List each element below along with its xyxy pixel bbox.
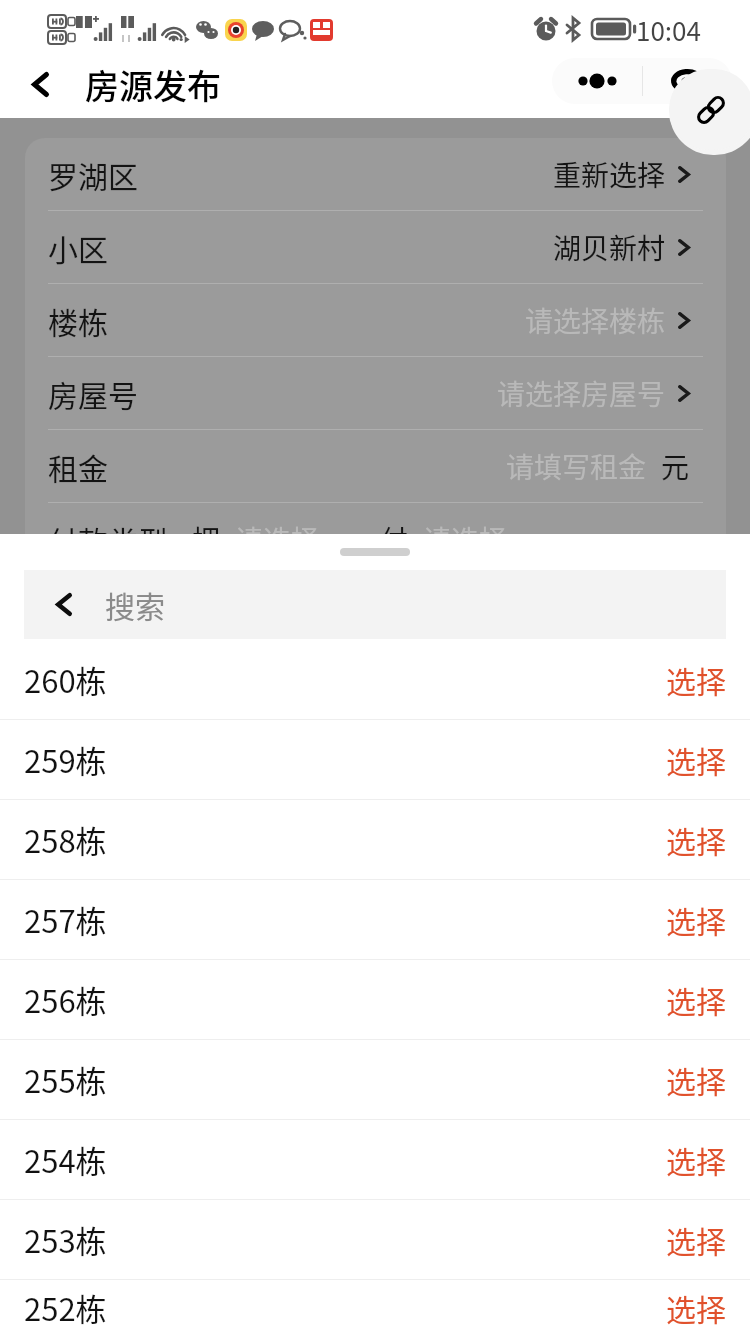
staticText: 255栋 bbox=[24, 1057, 107, 1102]
button[interactable]: 259栋 bbox=[0, 720, 750, 800]
button[interactable]: 楼栋 bbox=[25, 284, 726, 357]
button[interactable]: Close mini program bbox=[643, 58, 732, 104]
button[interactable]: 258栋 bbox=[0, 800, 750, 880]
staticText: 搜索 bbox=[105, 583, 165, 626]
staticText: 罗湖区 bbox=[48, 153, 138, 196]
staticText: 选择 bbox=[666, 978, 726, 1021]
staticText: 选择 bbox=[666, 898, 726, 941]
staticText: 请选择 bbox=[235, 519, 320, 560]
button[interactable]: Copy link bbox=[669, 69, 750, 150]
button[interactable]: 260栋 bbox=[0, 640, 750, 720]
staticText: 10:04 bbox=[636, 11, 701, 49]
staticText: 请选择 bbox=[423, 519, 508, 560]
staticText: 选择 bbox=[666, 738, 726, 781]
staticText: 房源发布 bbox=[85, 60, 221, 109]
button[interactable]: 252栋 bbox=[0, 1280, 750, 1334]
staticText: 253栋 bbox=[24, 1217, 107, 1262]
button[interactable]: 租金 bbox=[25, 430, 726, 503]
staticText: 押 bbox=[192, 519, 221, 560]
staticText: 256栋 bbox=[24, 977, 107, 1022]
button[interactable]: 罗湖区 bbox=[25, 138, 726, 211]
staticText: 请填写租金 bbox=[506, 446, 647, 487]
staticText: 254栋 bbox=[24, 1137, 107, 1182]
staticText: 湖贝新村 bbox=[553, 227, 666, 268]
staticText: 付款类型 bbox=[48, 518, 168, 561]
staticText: 选择 bbox=[666, 818, 726, 861]
button[interactable]: 搜索 bbox=[24, 570, 726, 639]
staticText: 257栋 bbox=[24, 897, 107, 942]
button[interactable]: 小区 bbox=[25, 211, 726, 284]
staticText: 选择 bbox=[666, 1138, 726, 1181]
staticText: 房屋号 bbox=[48, 372, 138, 415]
button[interactable]: 房屋号 bbox=[25, 357, 726, 430]
button[interactable]: Back bbox=[0, 50, 80, 118]
staticText: 小区 bbox=[48, 226, 108, 269]
staticText: 252栋 bbox=[24, 1285, 107, 1330]
staticText: 付 bbox=[380, 519, 409, 560]
staticText: 重新选择 bbox=[553, 154, 666, 195]
button[interactable]: 256栋 bbox=[0, 960, 750, 1040]
staticText: 259栋 bbox=[24, 737, 107, 782]
staticText: 选择 bbox=[666, 1286, 726, 1329]
button[interactable]: 253栋 bbox=[0, 1200, 750, 1280]
button[interactable]: 255栋 bbox=[0, 1040, 750, 1120]
staticText: 选择 bbox=[666, 658, 726, 701]
staticText: 选择 bbox=[666, 1218, 726, 1261]
button[interactable]: 257栋 bbox=[0, 880, 750, 960]
staticText: 选择 bbox=[666, 1058, 726, 1101]
staticText: 260栋 bbox=[24, 657, 107, 702]
button[interactable]: More options bbox=[552, 58, 642, 104]
staticText: 楼栋 bbox=[48, 299, 108, 342]
staticText: 元 bbox=[661, 446, 690, 487]
staticText: 258栋 bbox=[24, 817, 107, 862]
staticText: 请选择房屋号 bbox=[497, 373, 666, 414]
button[interactable]: 254栋 bbox=[0, 1120, 750, 1200]
staticText: 租金 bbox=[48, 445, 108, 488]
button[interactable]: Copy link bbox=[669, 66, 750, 155]
button[interactable]: 付款类型 bbox=[48, 503, 690, 575]
staticText: 请选择楼栋 bbox=[525, 300, 666, 341]
